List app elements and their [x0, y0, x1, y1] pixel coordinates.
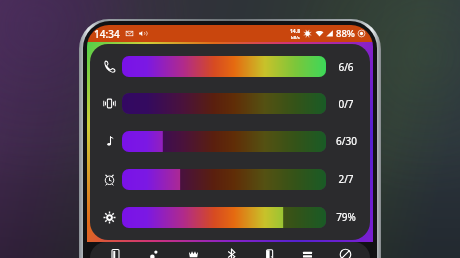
staticText: 79%: [336, 210, 356, 224]
button[interactable]: 79%: [90, 198, 370, 236]
button[interactable]: Premium: [174, 242, 212, 258]
staticText: 0/7: [338, 97, 354, 111]
staticText: 88%: [336, 27, 355, 40]
staticText: kB/s: [291, 35, 300, 40]
staticText: 6/6: [338, 60, 354, 74]
button[interactable]: Auto rotate: [250, 242, 288, 258]
button[interactable]: Do not disturb: [326, 242, 364, 258]
staticText: 6/30: [336, 134, 357, 148]
button[interactable]: 2/7: [90, 160, 370, 198]
button[interactable]: Split screen: [288, 242, 326, 258]
button[interactable]: 0/7: [90, 85, 370, 122]
staticText: 14:34: [94, 27, 120, 41]
button[interactable]: Battery saver: [96, 242, 135, 258]
staticText: 2/7: [338, 172, 354, 186]
button[interactable]: Bluetooth: [212, 242, 250, 258]
button[interactable]: 6/6: [90, 48, 370, 85]
button[interactable]: 6/30: [90, 122, 370, 160]
button[interactable]: Data: [135, 242, 174, 258]
staticText: 14.8: [290, 28, 300, 35]
